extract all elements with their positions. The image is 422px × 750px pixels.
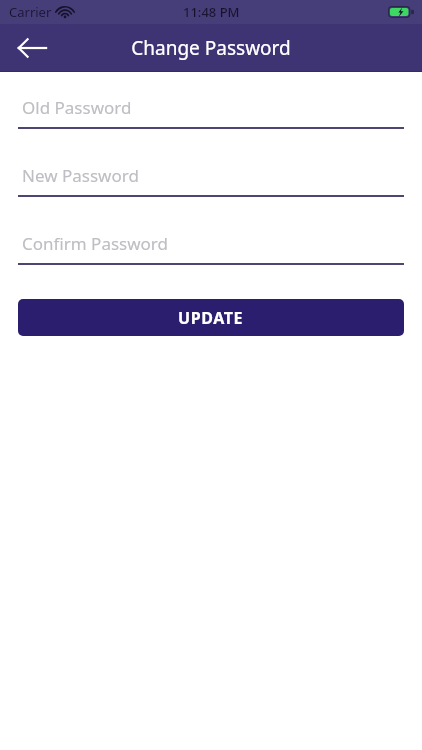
- staticText: Change Password: [131, 35, 291, 61]
- staticText: UPDATE: [178, 307, 244, 329]
- staticText: New Password: [22, 164, 139, 187]
- button[interactable]: New Password: [0, 155, 422, 197]
- staticText: Old Password: [22, 96, 132, 119]
- button[interactable]: Confirm Password: [0, 223, 422, 265]
- staticText: 11:48 PM: [183, 3, 240, 21]
- button[interactable]: UPDATE: [18, 299, 404, 336]
- button[interactable]: Old Password: [0, 87, 422, 129]
- staticText: Carrier: [9, 3, 52, 21]
- button[interactable]: Back: [10, 26, 54, 70]
- staticText: Confirm Password: [22, 232, 168, 255]
